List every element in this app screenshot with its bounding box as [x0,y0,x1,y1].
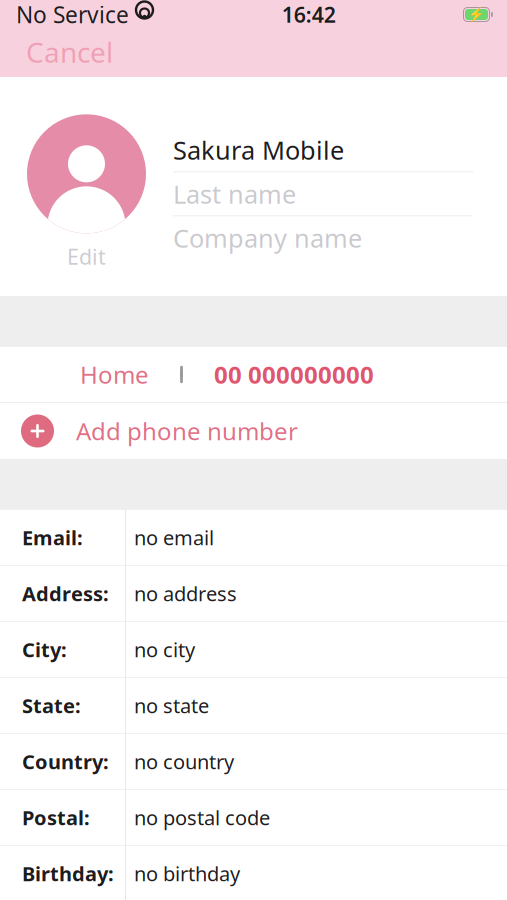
button[interactable]: Birthday: [0,846,507,900]
button[interactable]: Email: [0,510,507,565]
staticText: City: [22,636,67,663]
staticText: no birthday [134,860,240,887]
staticText: Edit [67,242,106,271]
staticText: State: [22,692,81,719]
staticText: no postal code [134,804,270,831]
staticText: no country [134,748,234,775]
staticText: 16:42 [282,0,336,29]
button[interactable]: City: [0,622,507,677]
button[interactable]: Add phone number [0,403,507,459]
staticText: No Service [16,0,129,29]
staticText: Country: [22,748,109,775]
button[interactable]: Cancel [0,24,129,80]
staticText: Address: [22,580,109,607]
staticText: no email [134,524,214,551]
staticText: Add phone number [76,415,298,447]
button[interactable]: Country: [0,734,507,789]
staticText: no city [134,636,195,663]
staticText: Last name [173,177,296,211]
staticText: Email: [22,524,83,551]
button[interactable]: State: [0,678,507,733]
button[interactable]: Postal: [0,790,507,845]
button[interactable]: Home [0,347,507,402]
staticText: Home [80,359,149,390]
staticText: Company name [173,221,362,255]
button[interactable]: Address: [0,566,507,621]
staticText: no state [134,692,209,719]
staticText: 00 000000000 [214,359,374,390]
staticText: Cancel [26,33,113,71]
button[interactable]: Edit photo [0,114,173,271]
staticText: ⚡ [468,7,485,22]
staticText: no address [134,580,237,607]
staticText: Postal: [22,804,90,831]
staticText: Birthday: [22,860,114,887]
staticText: Sakura Mobile [173,133,344,167]
